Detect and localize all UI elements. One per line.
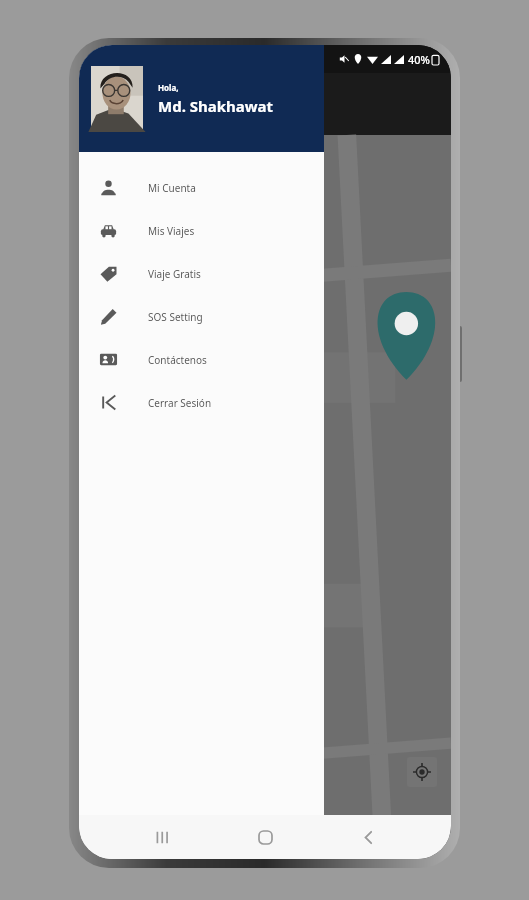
staticText: Cold Storage [83,392,135,404]
button[interactable]: Mi Cuenta [79,166,324,209]
button[interactable]: Contáctenos [79,338,324,381]
staticText: 40% [408,52,430,67]
staticText: Md. Shakhawat [158,96,274,116]
button[interactable]: SOS Setting [79,295,324,338]
button[interactable]: Home [245,817,285,857]
staticText: Cerrar Sesión [148,396,212,410]
staticText: rahmanbaria [83,363,135,375]
staticText: Mi Cuenta [148,181,196,195]
button[interactable]: Mis Viajes [79,209,324,252]
staticText: 12:59 [91,51,122,67]
staticText: Mis Viajes [148,224,195,238]
staticText: Viaje Gratis [148,267,201,281]
staticText: Hola, [158,82,179,93]
staticText: SOS Setting [148,310,203,324]
button[interactable]: Cerrar Sesión [79,381,324,424]
button[interactable]: Back [348,817,388,857]
staticText: Road Jame Ma [139,276,197,288]
button[interactable]: Recent apps [142,817,182,857]
button[interactable]: Viaje Gratis [79,252,324,295]
button[interactable]: My location [407,757,437,787]
staticText: Contáctenos [148,353,207,367]
